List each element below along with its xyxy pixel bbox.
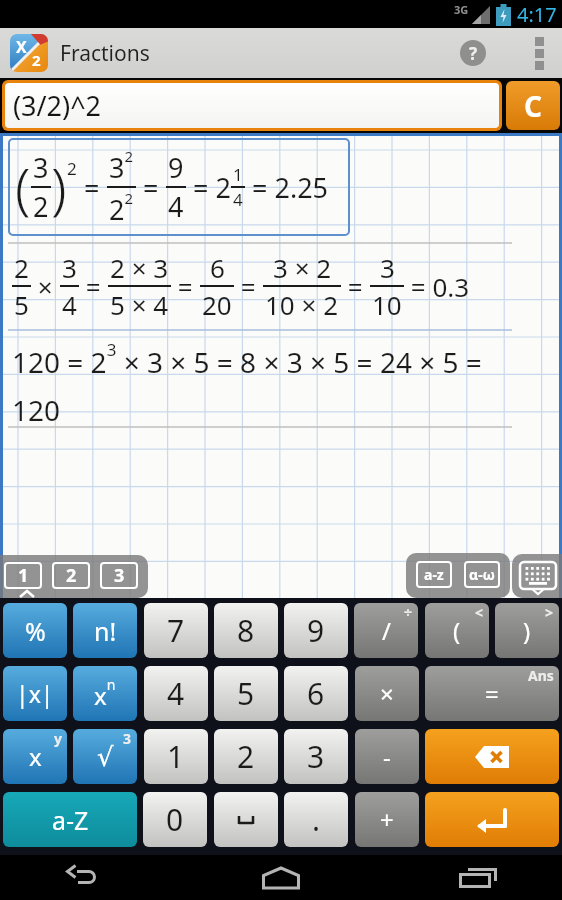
staticText: = xyxy=(485,677,499,710)
staticText: 4:17 xyxy=(517,1,557,28)
button[interactable]: ( xyxy=(8,138,350,236)
staticText: |x| xyxy=(16,678,54,709)
staticText: 3 xyxy=(62,250,77,285)
button[interactable]: 0 xyxy=(143,792,207,847)
button[interactable]: a-Z xyxy=(3,792,137,847)
staticText: 6 xyxy=(210,250,225,285)
button[interactable]: n! xyxy=(73,603,137,658)
staticText: - xyxy=(383,740,391,773)
button[interactable]: ? xyxy=(460,40,486,66)
button[interactable]: / xyxy=(354,603,418,658)
button[interactable]: a-z xyxy=(416,561,452,588)
staticText: 5 × 4 xyxy=(110,287,169,322)
staticText: ( xyxy=(453,614,461,647)
staticText: 8 xyxy=(237,610,255,651)
staticText: 4 xyxy=(168,188,184,225)
button[interactable]: 2 xyxy=(214,729,278,784)
staticText: 3 xyxy=(114,563,125,588)
button[interactable] xyxy=(456,860,500,896)
staticText: 2 xyxy=(14,250,29,285)
button[interactable]: 3 xyxy=(284,729,348,784)
button[interactable]: 9 xyxy=(284,603,348,658)
button[interactable] xyxy=(520,562,556,594)
button[interactable]: √ xyxy=(73,729,137,784)
staticText: × xyxy=(380,677,394,710)
staticText: 10 xyxy=(372,287,402,322)
button[interactable]: |x| xyxy=(3,666,67,721)
button[interactable]: 4 xyxy=(144,666,208,721)
button[interactable]: xn xyxy=(73,666,137,721)
button[interactable] xyxy=(60,860,104,896)
button[interactable] xyxy=(425,729,559,784)
staticText: 1 xyxy=(233,163,243,186)
staticText: α-ω xyxy=(469,565,495,584)
button[interactable]: × xyxy=(355,666,419,721)
staticText: 5 xyxy=(14,287,29,322)
staticText: = xyxy=(234,269,263,304)
staticText: Ans xyxy=(528,666,554,685)
staticText: 2 xyxy=(237,736,255,777)
button[interactable]: 7 xyxy=(144,603,208,658)
staticText: 3 xyxy=(307,736,325,777)
staticText: 3G xyxy=(454,2,469,17)
button[interactable]: 3 xyxy=(100,562,138,589)
button[interactable]: 1 xyxy=(144,729,208,784)
button[interactable]: % xyxy=(3,603,67,658)
button[interactable]: 2 xyxy=(12,246,470,326)
staticText: 32 xyxy=(109,146,134,186)
button[interactable]: - xyxy=(355,729,419,784)
staticText: % xyxy=(25,614,46,648)
staticText: 6 xyxy=(307,673,325,714)
button[interactable]: 6 xyxy=(284,666,348,721)
staticText: 22 xyxy=(109,188,134,228)
staticText: 2 xyxy=(32,50,41,70)
staticText: 7 xyxy=(167,610,185,651)
button[interactable]: 120 = 23 × 3 × 5 = 8 × 3 × 5 = 24 × 5 = xyxy=(12,338,482,429)
button[interactable]: . xyxy=(284,792,348,847)
staticText: √ xyxy=(97,742,114,772)
staticText: 1 xyxy=(18,563,29,588)
button[interactable]: = xyxy=(425,666,559,721)
button[interactable]: ( xyxy=(425,603,489,658)
staticText: 4 xyxy=(233,188,243,211)
staticText: n! xyxy=(94,614,117,648)
button[interactable] xyxy=(259,860,303,896)
button[interactable]: C xyxy=(506,81,560,130)
staticText: = xyxy=(79,269,108,304)
staticText: 4 xyxy=(167,673,185,714)
staticText: ? xyxy=(469,42,478,65)
button[interactable]: α-ω xyxy=(464,561,500,588)
staticText: 2 xyxy=(66,563,77,588)
staticText: 10 × 2 xyxy=(265,287,339,322)
staticText: (3/2)^2 xyxy=(13,87,102,124)
button[interactable]: 1 xyxy=(4,562,42,589)
button[interactable] xyxy=(425,792,559,847)
button[interactable] xyxy=(214,792,278,847)
staticText: . xyxy=(312,799,321,840)
button[interactable]: + xyxy=(355,792,419,847)
staticText: x xyxy=(29,740,42,773)
staticText: × xyxy=(31,269,60,304)
staticText: = xyxy=(341,269,370,304)
staticText: 2 xyxy=(33,188,49,225)
staticText: 3 xyxy=(123,729,132,748)
staticText: C xyxy=(524,87,542,125)
staticText: > xyxy=(545,603,554,622)
button[interactable]: x xyxy=(3,729,67,784)
staticText: = 2.25 xyxy=(245,169,329,206)
button[interactable]: 5 xyxy=(214,666,278,721)
button[interactable]: 2 xyxy=(52,562,90,589)
staticText: = 0.3 xyxy=(404,269,470,304)
staticText: 3 × 2 xyxy=(273,250,332,285)
staticText: 3 xyxy=(33,149,49,186)
button[interactable]: 8 xyxy=(214,603,278,658)
staticText: 2 × 3 xyxy=(110,250,169,285)
button[interactable]: ) xyxy=(495,603,559,658)
button[interactable]: (3/2)^2 xyxy=(5,83,499,128)
staticText: a-z xyxy=(424,565,444,584)
staticText: 20 xyxy=(202,287,232,322)
staticText: 4 xyxy=(62,287,77,322)
staticText: ( xyxy=(15,149,31,225)
button[interactable] xyxy=(535,37,544,70)
staticText: ) xyxy=(523,614,531,647)
